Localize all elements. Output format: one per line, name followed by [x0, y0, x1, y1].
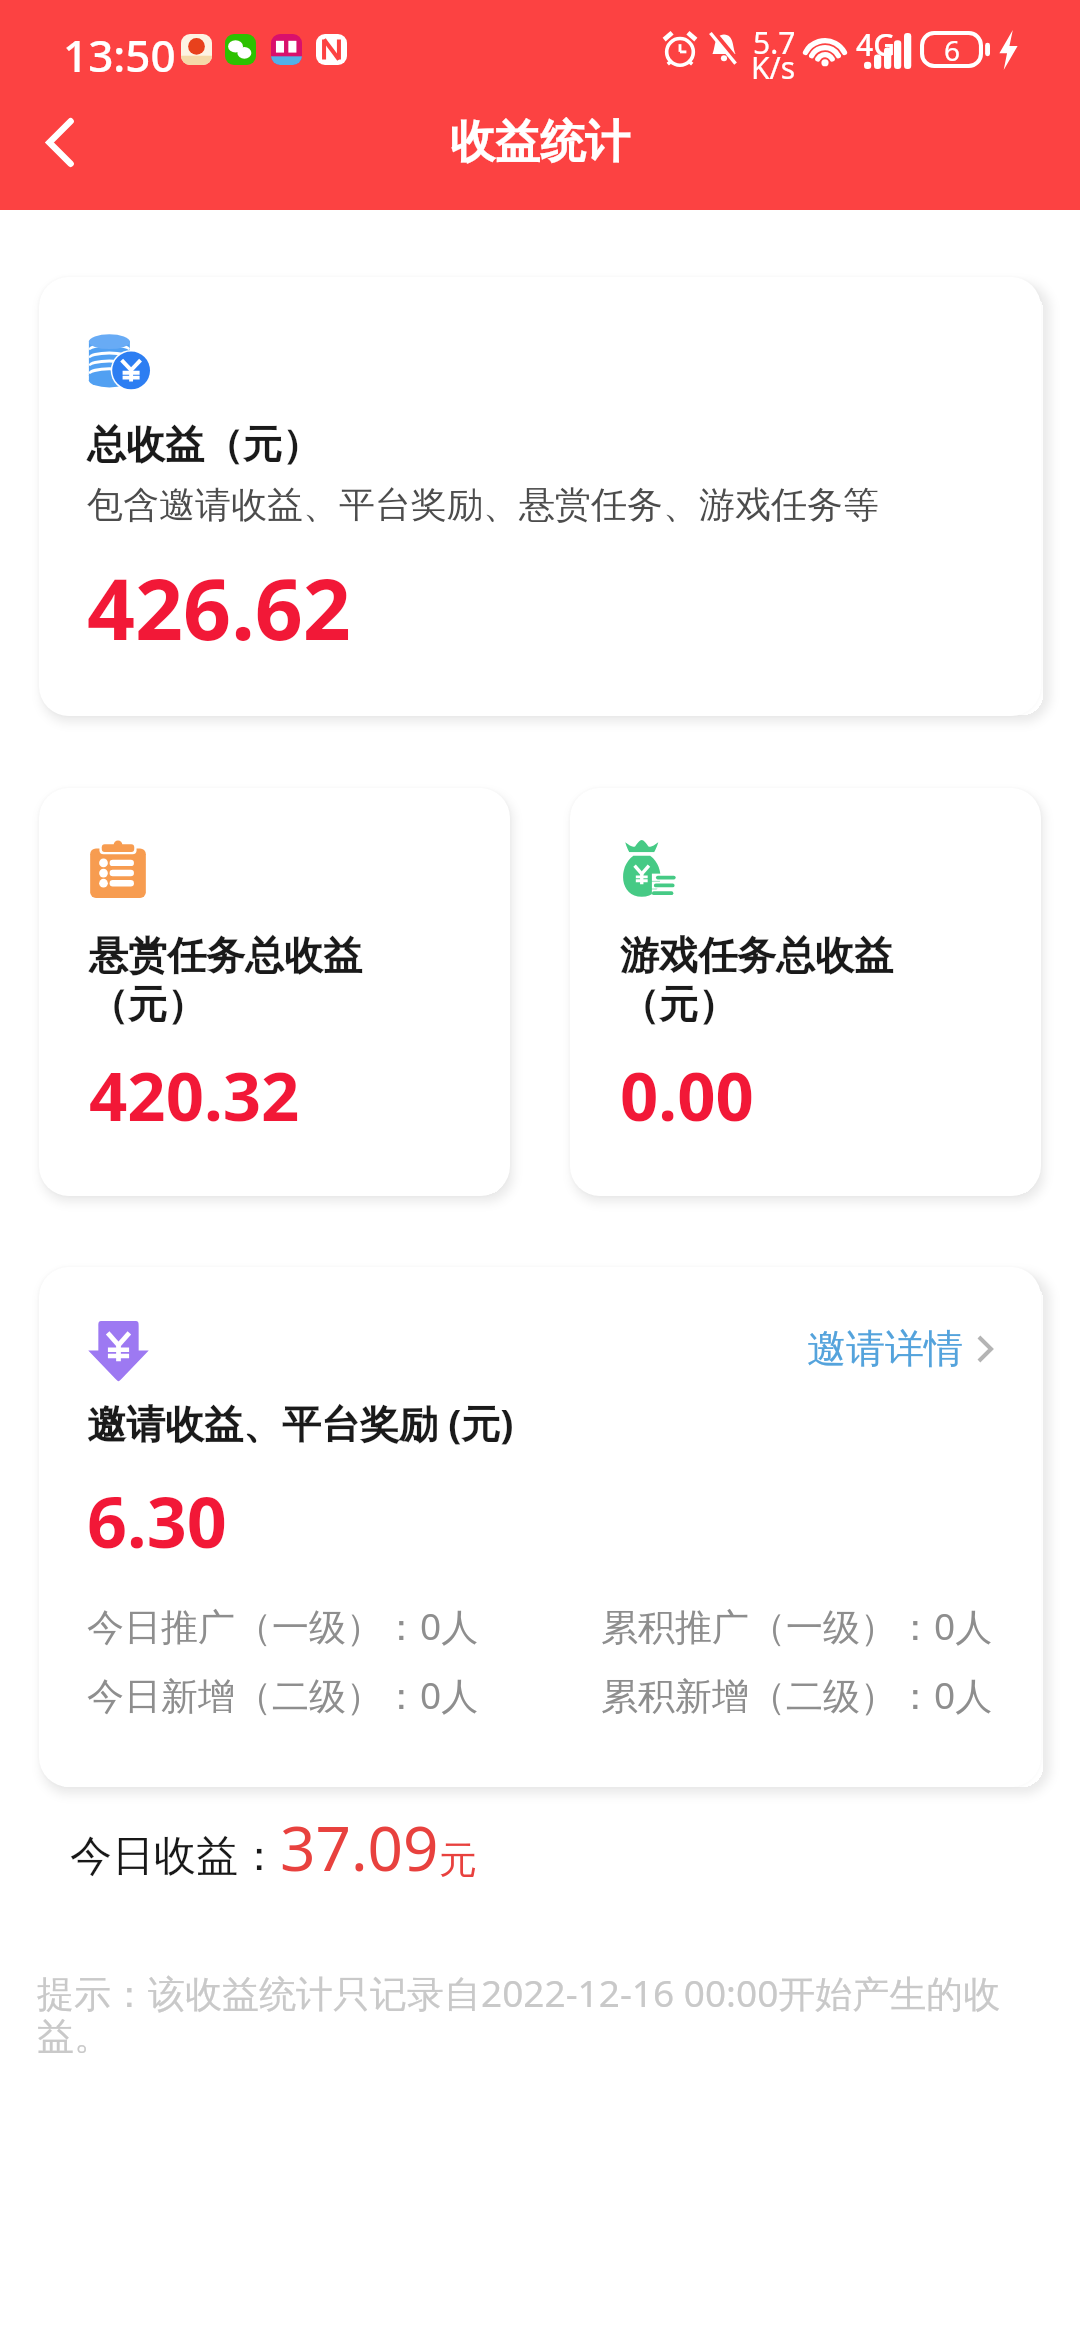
- staticText: 37.09: [280, 1805, 439, 1889]
- button[interactable]: 邀请详情: [787, 1304, 1013, 1393]
- staticText: 4G: [856, 24, 895, 65]
- staticText: 今日推广（一级）：0人: [87, 1600, 601, 1651]
- staticText: 今日收益：: [70, 1830, 280, 1883]
- staticText: 426.62: [87, 550, 351, 664]
- staticText: 6: [944, 31, 961, 68]
- staticText: 邀请收益、平台奖励 (元): [87, 1396, 514, 1449]
- button[interactable]: 总收益（元）: [39, 277, 1041, 716]
- button[interactable]: 游戏任务总收益（元）: [570, 788, 1041, 1196]
- button[interactable]: 悬赏任务总收益（元）: [39, 788, 510, 1196]
- staticText: K/s: [751, 47, 796, 88]
- staticText: 元: [439, 1836, 477, 1884]
- staticText: 悬赏任务总收益（元）: [89, 931, 379, 1029]
- staticText: 包含邀请收益、平台奖励、悬赏任务、游戏任务等: [87, 482, 879, 527]
- staticText: 累积推广（一级）：0人: [601, 1600, 993, 1651]
- staticText: 总收益（元）: [87, 420, 321, 469]
- staticText: 5.7: [753, 22, 796, 63]
- staticText: 累积新增（二级）：0人: [601, 1669, 993, 1720]
- button[interactable]: Back: [15, 97, 105, 187]
- staticText: 游戏任务总收益（元）: [620, 931, 910, 1029]
- staticText: 420.32: [89, 1049, 300, 1140]
- staticText: 13:50: [63, 25, 176, 85]
- staticText: 提示：该收益统计只记录自2022-12-16 00:00开始产生的收益。: [37, 1967, 1042, 2060]
- staticText: 0.00: [620, 1049, 754, 1140]
- staticText: 今日新增（二级）：0人: [87, 1669, 601, 1720]
- staticText: 6.30: [87, 1473, 227, 1568]
- staticText: 邀请详情: [807, 1324, 963, 1373]
- staticText: 收益统计: [450, 114, 630, 171]
